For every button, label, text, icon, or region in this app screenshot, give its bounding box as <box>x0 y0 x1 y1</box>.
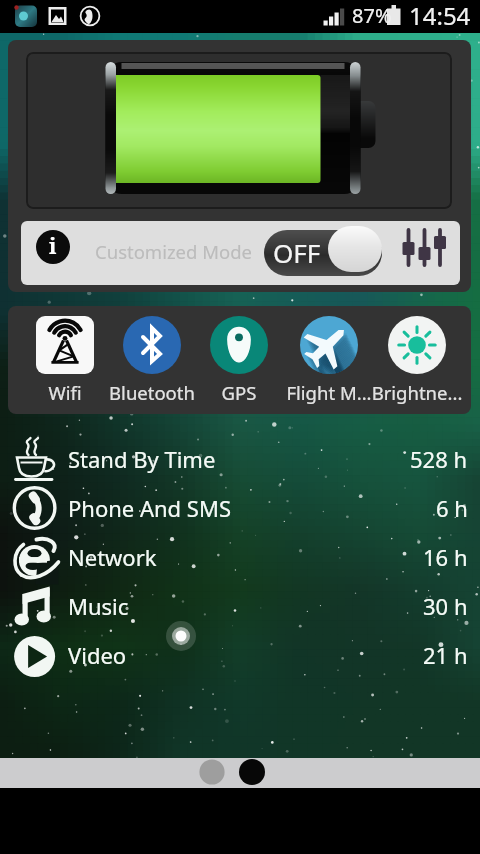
button[interactable]: Video <box>0 630 480 679</box>
button[interactable]: Settings <box>404 227 448 271</box>
staticText: OFF <box>273 235 321 270</box>
staticText: i <box>49 232 57 261</box>
staticText: 87% <box>352 2 392 29</box>
staticText: Video <box>68 640 127 670</box>
staticText: Customized Mode <box>95 239 253 264</box>
staticText: Phone And SMS <box>68 493 231 523</box>
button[interactable]: OFF <box>264 230 382 276</box>
button[interactable] <box>193 306 285 414</box>
button[interactable]: Network <box>0 532 480 581</box>
staticText: 14:54 <box>409 0 471 32</box>
staticText: GPS <box>183 380 295 405</box>
staticText: 21 h <box>423 640 468 670</box>
staticText: Bluetooth <box>96 380 208 405</box>
staticText: 528 h <box>410 444 468 474</box>
staticText: 6 h <box>436 493 468 523</box>
button[interactable]: i <box>21 221 460 285</box>
button[interactable] <box>19 306 111 414</box>
button[interactable]: Music <box>0 581 480 630</box>
button[interactable]: Phone And SMS <box>0 483 480 532</box>
button[interactable] <box>106 306 198 414</box>
staticText: Stand By Time <box>68 444 216 474</box>
button[interactable] <box>283 306 375 414</box>
staticText: Network <box>68 542 157 572</box>
staticText: Brightne... <box>361 380 471 405</box>
button[interactable]: Stand By Time <box>0 434 480 483</box>
staticText: Flight M... <box>273 380 385 405</box>
staticText: Wifi <box>9 380 121 405</box>
staticText: 30 h <box>423 591 468 621</box>
staticText: Music <box>68 591 129 621</box>
button[interactable] <box>371 306 463 414</box>
staticText: 16 h <box>423 542 468 572</box>
